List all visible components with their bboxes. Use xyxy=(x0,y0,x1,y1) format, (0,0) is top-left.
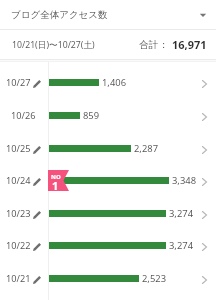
other: 詳細 xyxy=(193,262,216,295)
other: 詳細 xyxy=(193,164,216,197)
other: 詳細 xyxy=(193,66,216,99)
other: 詳細 xyxy=(193,99,216,132)
other: 詳細 xyxy=(193,229,216,262)
staticText: 1 xyxy=(52,178,59,193)
button[interactable]: 10/27 xyxy=(0,66,216,99)
staticText: NO xyxy=(51,173,61,181)
staticText: 1,406 xyxy=(102,76,127,89)
staticText: 3,274 xyxy=(169,239,194,252)
button[interactable]: 10/25 xyxy=(0,132,216,165)
button[interactable]: 10/23 xyxy=(0,197,216,230)
button[interactable]: 10/22 xyxy=(0,229,216,262)
other: 詳細 xyxy=(193,132,216,165)
staticText: 10/25 xyxy=(6,142,31,155)
other: 詳細 xyxy=(193,197,216,230)
staticText: 10/24 xyxy=(6,174,31,187)
button[interactable]: 10/26 xyxy=(0,99,216,132)
staticText: 10/23 xyxy=(6,207,31,220)
staticText: ブログ全体アクセス数 xyxy=(11,9,108,21)
staticText: 10/27 xyxy=(6,76,31,89)
button[interactable]: 10/21 xyxy=(0,262,216,295)
button[interactable]: 10/24 xyxy=(0,164,216,197)
staticText: 合計 xyxy=(139,39,159,51)
staticText: 3,348 xyxy=(172,174,197,187)
staticText: 2,287 xyxy=(134,142,159,155)
staticText: 10/26 xyxy=(11,109,36,122)
staticText: 10/22 xyxy=(6,239,31,252)
button[interactable]: ブログ全体アクセス数 xyxy=(0,0,216,29)
staticText: ： xyxy=(159,39,169,51)
staticText: 10/21(日)〜10/27(土) xyxy=(12,39,95,51)
staticText: 859 xyxy=(83,109,100,122)
staticText: 3,274 xyxy=(169,207,194,220)
staticText: 10/21 xyxy=(6,272,31,285)
staticText: 2,523 xyxy=(142,272,167,285)
staticText: 16,971 xyxy=(172,37,207,52)
